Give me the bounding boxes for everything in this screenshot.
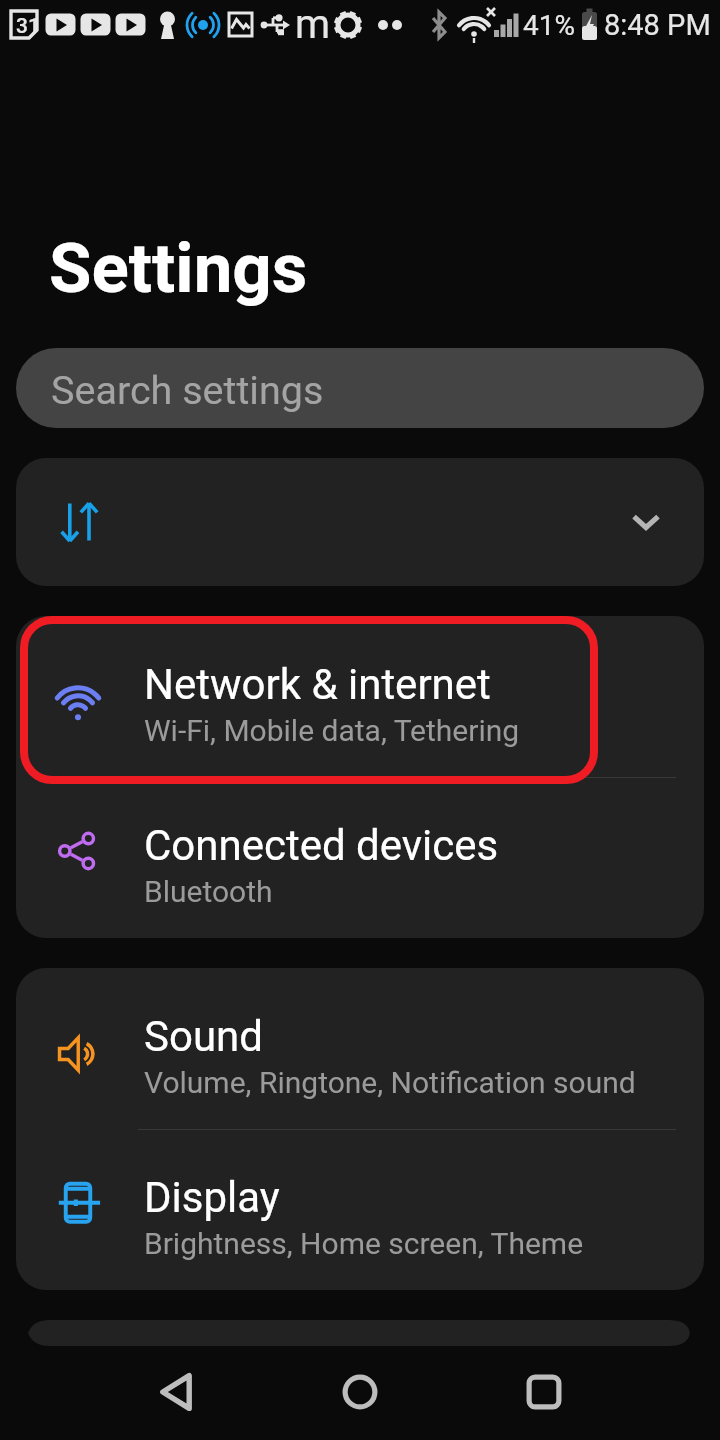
button[interactable]: Back	[131, 1347, 221, 1437]
button[interactable]: Sound	[16, 968, 704, 1129]
staticText: m	[295, 1, 331, 48]
button[interactable]: Recent apps	[499, 1347, 589, 1437]
staticText: 8:48 PM	[604, 8, 711, 42]
staticText: Network & internet	[144, 660, 491, 709]
staticText: Wi-Fi, Mobile data, Tethering	[144, 713, 520, 748]
staticText: Settings	[49, 228, 308, 309]
button[interactable]: Search settings	[16, 348, 704, 428]
staticText: Display	[144, 1173, 280, 1222]
staticText: Volume, Ringtone, Notification sound	[144, 1065, 636, 1100]
button[interactable]: Display	[16, 1130, 704, 1290]
staticText: 41%	[523, 9, 575, 42]
staticText: Brightness, Home screen, Theme	[144, 1226, 584, 1261]
staticText: 31	[16, 14, 40, 39]
other: Expand	[626, 502, 666, 542]
button[interactable]: Home	[315, 1347, 405, 1437]
staticText: Sound	[144, 1012, 263, 1061]
staticText: Connected devices	[144, 821, 499, 870]
staticText: Bluetooth	[144, 874, 273, 909]
button[interactable]: Connected devices	[16, 778, 704, 938]
button[interactable]: Expand	[16, 458, 704, 586]
button[interactable]: Network & internet	[16, 616, 704, 777]
staticText: Search settings	[51, 367, 324, 413]
